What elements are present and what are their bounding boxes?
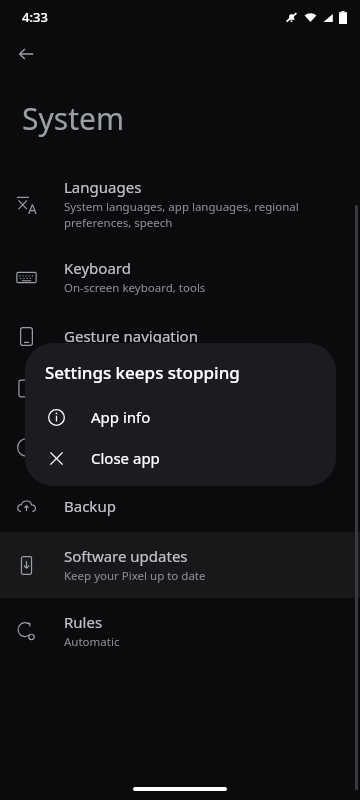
staticText: Settings keeps stopping bbox=[45, 361, 240, 384]
staticText: Gestures bbox=[64, 378, 127, 398]
staticText: Software updates bbox=[64, 546, 188, 566]
button[interactable]: App info bbox=[25, 403, 336, 431]
staticText: Backup bbox=[64, 496, 116, 516]
staticText: System bbox=[22, 98, 124, 139]
staticText: GMT-04:00 Eastern Daylight Time bbox=[64, 450, 244, 466]
button[interactable]: Keyboard bbox=[0, 244, 360, 310]
staticText: On-screen keyboard, tools bbox=[64, 280, 206, 296]
button[interactable]: Close app bbox=[25, 444, 336, 472]
button[interactable]: Software updates bbox=[0, 532, 360, 598]
staticText: Keep your Pixel up to date bbox=[64, 568, 206, 584]
staticText: Languages bbox=[64, 177, 142, 197]
staticText: Rules bbox=[64, 612, 103, 632]
button[interactable]: Date & time bbox=[0, 414, 360, 480]
staticText: Keyboard bbox=[64, 258, 131, 278]
button[interactable]: Gestures bbox=[0, 362, 360, 414]
staticText: Close app bbox=[91, 448, 160, 468]
staticText: Gesture navigation bbox=[64, 326, 198, 346]
staticText: Automatic bbox=[64, 634, 120, 650]
button[interactable]: Backup bbox=[0, 480, 360, 532]
button[interactable]: Back bbox=[10, 38, 42, 70]
staticText: 4:33 bbox=[22, 8, 48, 26]
button[interactable]: Rules bbox=[0, 598, 360, 664]
button[interactable]: Languages bbox=[0, 163, 360, 244]
staticText: App info bbox=[91, 407, 151, 427]
staticText: System languages, app languages, regiona… bbox=[64, 199, 299, 230]
button[interactable]: Gesture navigation bbox=[0, 310, 360, 362]
